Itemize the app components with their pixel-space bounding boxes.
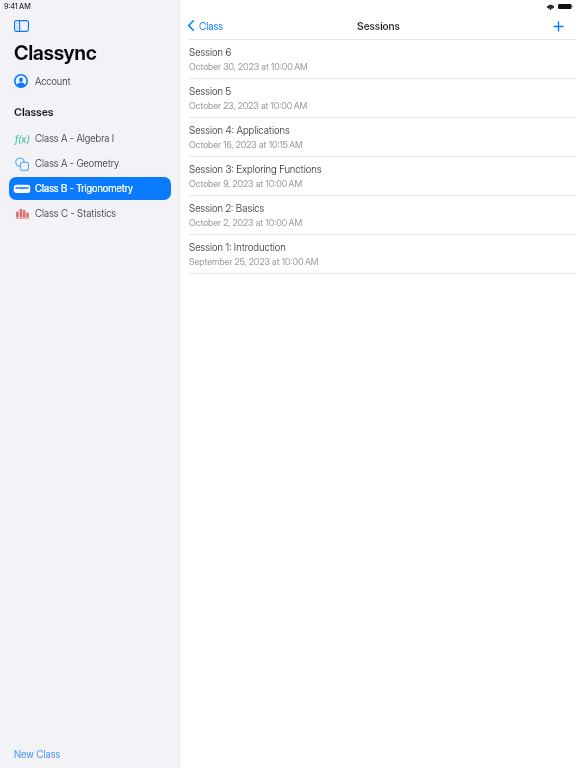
button[interactable]: Session 1: Introduction xyxy=(180,235,576,273)
staticText: Session 2: Basics xyxy=(189,202,265,214)
button[interactable]: Class B - Trigonometry xyxy=(9,177,171,200)
button[interactable]: Class xyxy=(180,13,231,38)
button[interactable]: Session 3: Exploring Functions xyxy=(180,157,576,195)
button[interactable]: Add session xyxy=(547,16,569,38)
staticText: October 23, 2023 at 10:00 AM xyxy=(189,100,308,111)
staticText: Session 4: Applications xyxy=(189,124,290,136)
staticText: Class xyxy=(199,20,223,32)
staticText: Session 3: Exploring Functions xyxy=(189,163,322,175)
staticText: Session 1: Introduction xyxy=(189,241,286,253)
staticText: Account xyxy=(35,76,71,88)
staticText: Class C - Statistics xyxy=(35,208,117,220)
button[interactable]: Session 5 xyxy=(180,79,576,117)
button[interactable]: Class C - Statistics xyxy=(9,202,171,225)
staticText: October 9, 2023 at 10:00 AM xyxy=(189,178,303,189)
button[interactable]: New Class xyxy=(0,743,180,765)
staticText: 9:41 AM xyxy=(4,2,31,11)
button[interactable]: Account xyxy=(0,71,180,93)
staticText: October 2, 2023 at 10:00 AM xyxy=(189,217,303,228)
staticText: October 16, 2023 at 10:15 AM xyxy=(189,139,303,150)
staticText: Classes xyxy=(14,105,54,118)
staticText: New Class xyxy=(14,748,61,760)
button[interactable]: Session 4: Applications xyxy=(180,118,576,156)
staticText: Session 5 xyxy=(189,85,232,97)
staticText: Class A - Algebra I xyxy=(35,133,114,145)
button[interactable]: Session 2: Basics xyxy=(180,196,576,234)
staticText: September 25, 2023 at 10:00 AM xyxy=(189,256,319,267)
button[interactable]: Class A - Geometry xyxy=(9,152,171,175)
button[interactable]: f(x) xyxy=(9,127,171,150)
staticText: October 30, 2023 at 10:00 AM xyxy=(189,61,308,72)
staticText: Sessions xyxy=(357,20,400,33)
staticText: Class A - Geometry xyxy=(35,158,119,170)
staticText: f(x) xyxy=(15,133,30,145)
button[interactable]: Session 6 xyxy=(180,40,576,78)
button[interactable]: Toggle Sidebar xyxy=(8,15,35,37)
staticText: Classync xyxy=(14,41,97,65)
staticText: Class B - Trigonometry xyxy=(35,183,133,195)
staticText: Session 6 xyxy=(189,46,232,58)
